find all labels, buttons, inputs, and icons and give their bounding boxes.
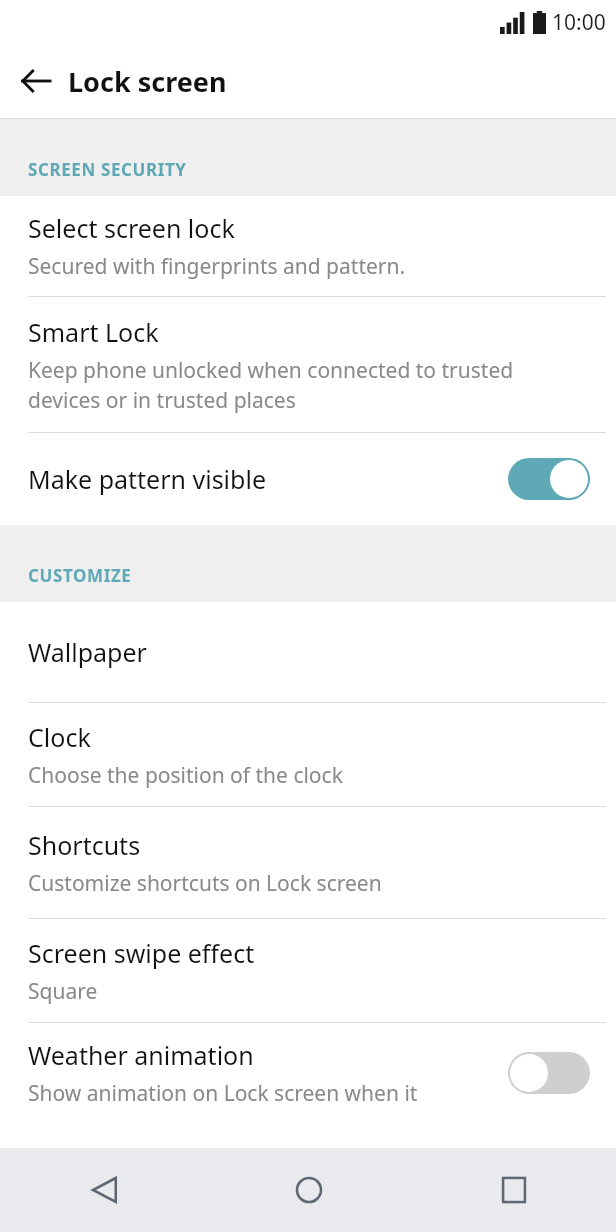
staticText: Keep phone unlocked when connected to tr… [28,356,514,414]
staticText: SCREEN SECURITY [28,158,187,181]
button[interactable]: Select screen lock [0,196,616,296]
button[interactable]: Weather animation [0,1023,616,1123]
staticText: 10:00 [552,8,606,37]
button[interactable]: Clock [0,703,616,806]
staticText: Shortcuts [28,828,141,862]
button[interactable]: Smart Lock [0,297,616,432]
staticText: Screen swipe effect [28,936,255,970]
staticText: Make pattern visible [28,462,266,496]
staticText: Square [28,977,98,1006]
staticText: Show animation on Lock screen when it [28,1079,418,1108]
button[interactable]: Wallpaper [0,602,616,702]
staticText: Weather animation [28,1038,254,1072]
staticText: Choose the position of the clock [28,761,343,790]
staticText: Secured with fingerprints and pattern. [28,252,406,281]
staticText: Select screen lock [28,211,235,245]
button[interactable]: Back [10,55,62,107]
button[interactable]: Home [206,1148,411,1232]
button[interactable]: Shortcuts [0,807,616,918]
button[interactable]: Back [0,1148,206,1232]
staticText: Lock screen [68,63,227,100]
button[interactable]: Make pattern visible [0,433,616,525]
staticText: Smart Lock [28,315,159,349]
staticText: Clock [28,720,91,754]
staticText: CUSTOMIZE [28,564,132,587]
button[interactable]: Screen swipe effect [0,919,616,1022]
staticText: Customize shortcuts on Lock screen [28,869,382,898]
button[interactable]: Recents [411,1148,616,1232]
staticText: Wallpaper [28,635,147,669]
